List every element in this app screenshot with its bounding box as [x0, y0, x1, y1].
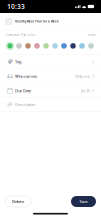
button[interactable]: Description	[0, 98, 101, 111]
staticText: 10:33	[7, 2, 25, 11]
button[interactable]: Who can see	[0, 69, 101, 83]
button[interactable]: Delete	[5, 196, 31, 207]
staticText: Who can see	[15, 73, 37, 79]
button[interactable]: Color 1	[5, 39, 14, 52]
staticText: Only me	[75, 73, 90, 79]
staticText: Description	[15, 102, 35, 107]
staticText: Customize Plan Color	[5, 33, 35, 37]
button[interactable]: Color 5	[41, 39, 50, 52]
button[interactable]: Color 4	[32, 39, 41, 52]
button[interactable]: Color 10	[86, 39, 95, 52]
button[interactable]: Color 2	[14, 39, 23, 52]
button[interactable]: Due Date	[0, 84, 101, 98]
button[interactable]: Color 7	[59, 39, 68, 52]
button[interactable]: Healthy Meal Plan for a Week	[0, 13, 101, 30]
staticText: Reset	[87, 33, 95, 37]
staticText: Healthy Meal Plan for a Week	[15, 20, 59, 23]
button[interactable]: Color 8	[68, 39, 77, 52]
button[interactable]: Color 6	[50, 39, 59, 52]
button[interactable]: Reset	[87, 33, 95, 37]
button[interactable]: Tag	[0, 55, 101, 69]
button[interactable]: Color 9	[77, 39, 86, 52]
staticText: Jul 25	[81, 88, 90, 93]
staticText: Save	[79, 199, 87, 204]
button[interactable]: Save	[71, 196, 96, 207]
staticText: Delete	[12, 199, 24, 204]
staticText: Tag	[15, 59, 21, 64]
button[interactable]: Color 3	[23, 39, 32, 52]
staticText: Due Date	[15, 88, 31, 93]
